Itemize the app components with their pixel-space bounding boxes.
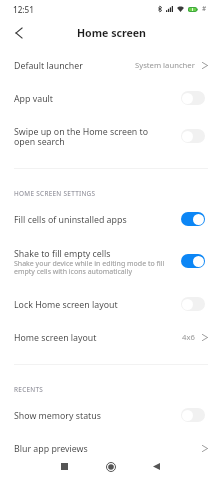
staticText: System launcher (135, 60, 195, 70)
button[interactable]: Toggle (181, 408, 205, 422)
button[interactable]: Blur app previews (0, 432, 222, 455)
button[interactable]: Default launcher (0, 49, 222, 82)
button[interactable]: Toggle (181, 91, 205, 105)
button[interactable]: Swipe up on the Home screen to open sear… (0, 115, 222, 158)
staticText: Default launcher (14, 61, 83, 71)
staticText: Home screen (77, 26, 146, 40)
staticText: RECENTS (14, 385, 44, 394)
button[interactable]: Toggle (181, 212, 205, 226)
staticText: 12:51 (13, 4, 34, 15)
button[interactable]: Recents (50, 454, 78, 479)
staticText: Fill cells of uninstalled apps (14, 215, 127, 225)
staticText: HOME SCREEN SETTINGS (14, 189, 96, 198)
staticText: 4x6 (182, 332, 195, 342)
button[interactable]: Home screen layout (0, 321, 222, 354)
button[interactable]: Show memory status (0, 399, 222, 432)
button[interactable]: Shake to fill empty cells (0, 236, 222, 288)
button[interactable]: Home (97, 454, 125, 479)
button[interactable]: Toggle (181, 129, 205, 143)
staticText: Shake to fill empty cells (14, 249, 111, 259)
staticText: Blur app previews (14, 444, 88, 454)
staticText: Swipe up on the Home screen to open sear… (14, 127, 165, 147)
button[interactable]: App vault (0, 82, 222, 115)
button[interactable]: Back (7, 22, 31, 44)
staticText: Show memory status (14, 411, 101, 421)
staticText: Shake your device while in editing mode … (14, 260, 177, 276)
staticText: Home screen layout (14, 333, 97, 343)
staticText: # (202, 4, 207, 13)
staticText: App vault (14, 94, 54, 104)
button[interactable]: Toggle (181, 297, 205, 311)
button[interactable]: Lock Home screen layout (0, 288, 222, 321)
button[interactable]: Back (142, 454, 170, 479)
button[interactable]: Fill cells of uninstalled apps (0, 203, 222, 236)
staticText: Lock Home screen layout (14, 300, 118, 310)
button[interactable]: Toggle (181, 254, 205, 268)
